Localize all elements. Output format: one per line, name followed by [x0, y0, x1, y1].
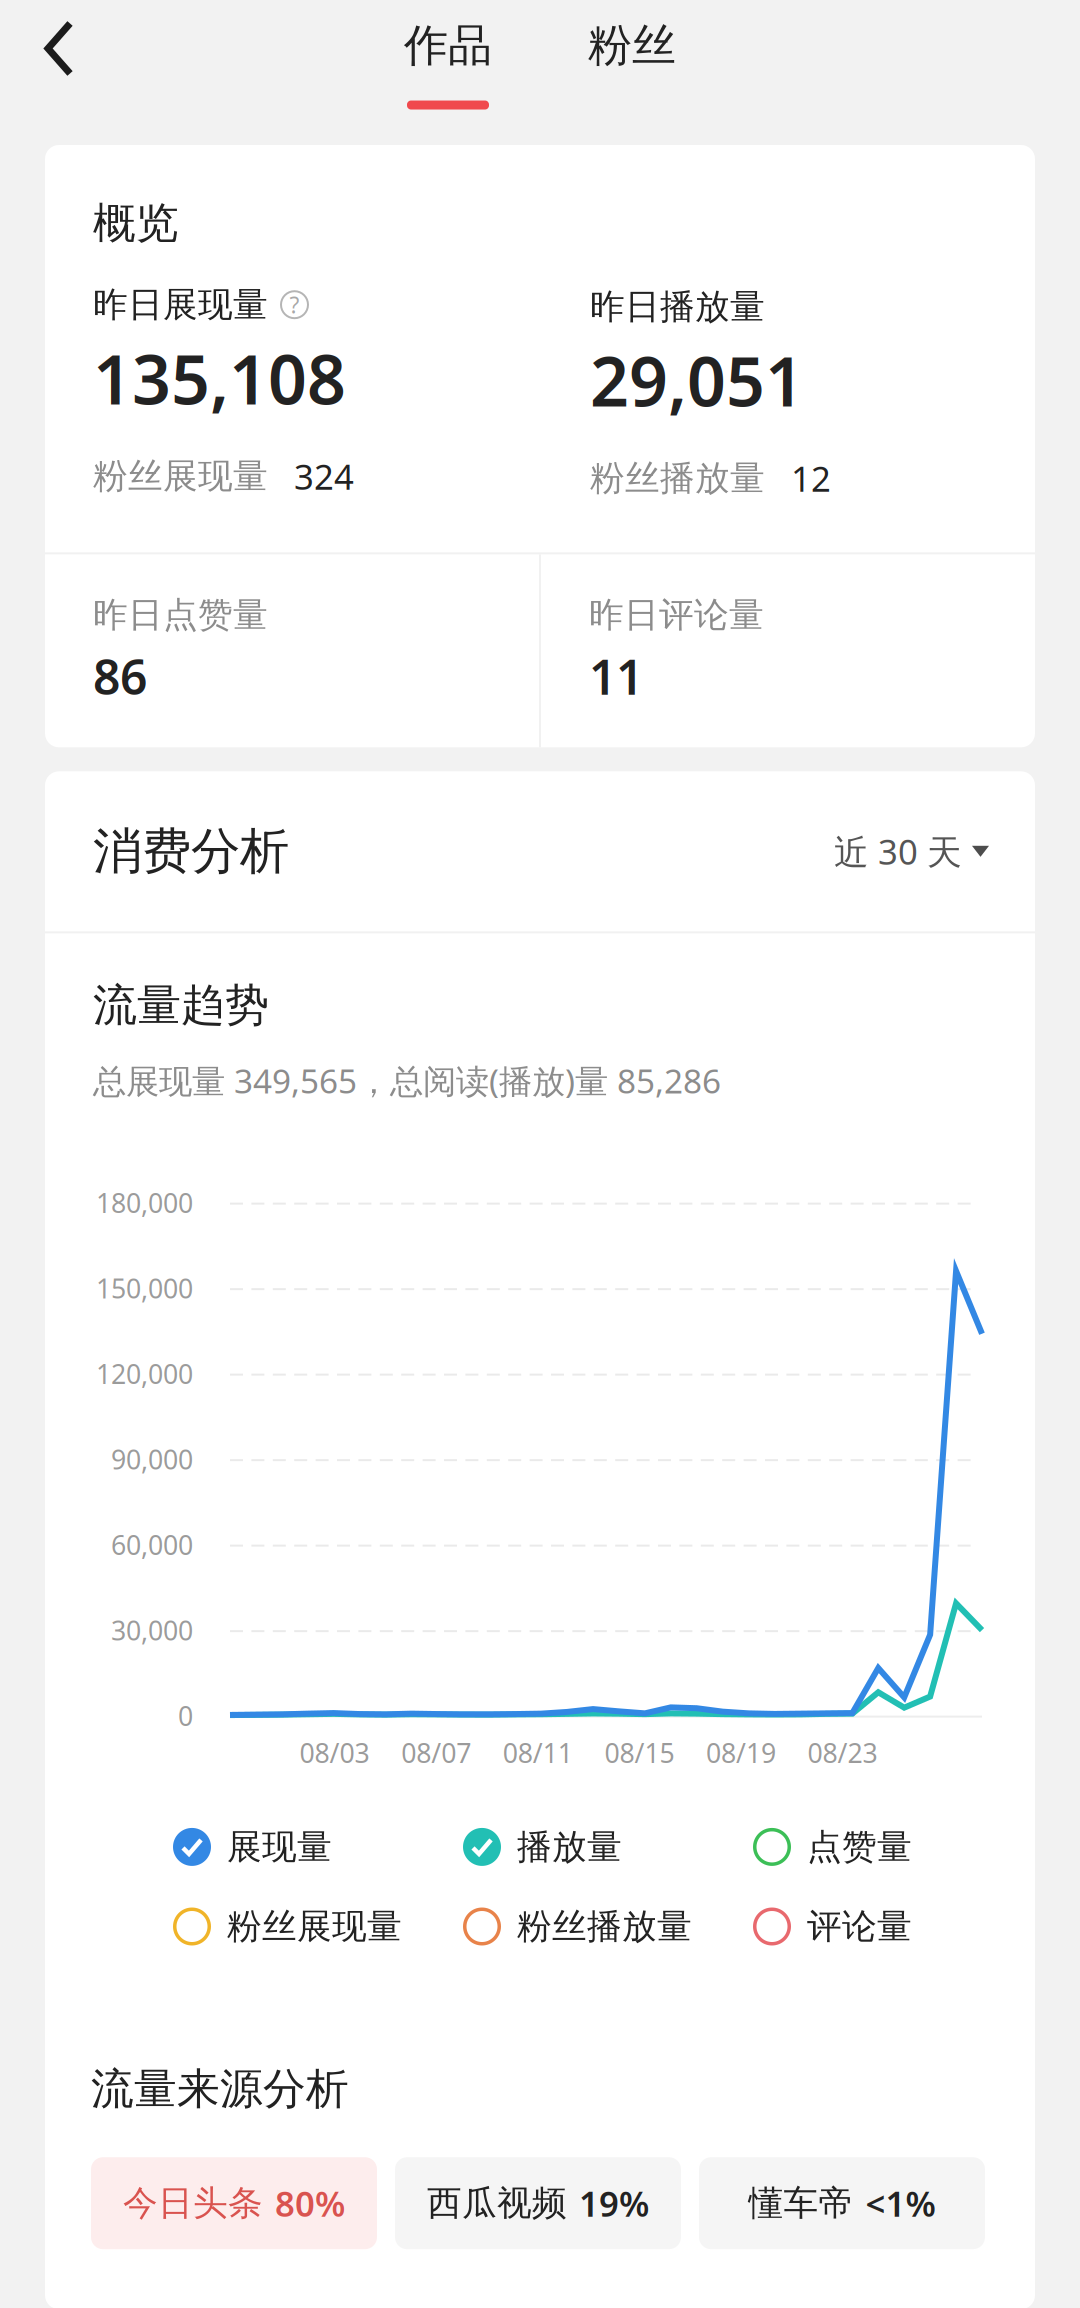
staticText: 180,000 — [96, 1185, 193, 1220]
staticText: 点赞量 — [807, 1826, 912, 1868]
staticText: 粉丝播放量 — [517, 1905, 692, 1948]
button[interactable]: 粉丝播放量 — [463, 1905, 753, 1948]
staticText: 昨日评论量 — [589, 594, 764, 636]
staticText: 总展现量 349,565，总阅读(播放)量 85,286 — [93, 1058, 721, 1103]
staticText: 60,000 — [111, 1527, 193, 1562]
staticText: 流量趋势 — [93, 978, 269, 1032]
staticText: 0 — [178, 1698, 193, 1733]
staticText: 11 — [589, 644, 643, 708]
button[interactable]: 懂车帝 — [699, 2157, 985, 2249]
staticText: 08/03 — [300, 1735, 370, 1770]
staticText: 08/11 — [503, 1735, 573, 1770]
staticText: 懂车帝 — [748, 2182, 853, 2224]
button[interactable]: 播放量 — [463, 1826, 753, 1868]
staticText: 90,000 — [111, 1441, 193, 1477]
staticText: 昨日展现量 — [93, 283, 268, 326]
staticText: <1% — [865, 2180, 935, 2226]
button[interactable]: 粉丝展现量 — [173, 1905, 463, 1948]
staticText: 粉丝播放量 — [590, 457, 765, 500]
staticText: 86 — [93, 644, 147, 708]
staticText: 135,108 — [93, 333, 346, 423]
staticText: 流量来源分析 — [91, 2063, 349, 2115]
staticText: 19% — [579, 2180, 649, 2226]
button[interactable]: 作品 — [404, 18, 492, 109]
staticText: 评论量 — [807, 1905, 912, 1948]
button[interactable]: 粉丝 — [588, 18, 676, 109]
staticText: 08/15 — [604, 1735, 674, 1770]
staticText: 80% — [275, 2180, 345, 2226]
staticText: ? — [289, 290, 299, 320]
staticText: 08/07 — [401, 1735, 471, 1770]
staticText: 消费分析 — [93, 821, 289, 882]
button[interactable]: 评论量 — [753, 1905, 983, 1948]
staticText: 展现量 — [227, 1826, 332, 1868]
button[interactable]: Back — [0, 35, 77, 78]
button[interactable]: 展现量 — [173, 1826, 463, 1868]
staticText: 作品 — [404, 18, 492, 72]
staticText: 30,000 — [111, 1612, 193, 1648]
staticText: 150,000 — [96, 1270, 193, 1306]
staticText: 粉丝展现量 — [93, 455, 268, 498]
staticText: 08/19 — [706, 1735, 776, 1770]
staticText: 播放量 — [517, 1826, 622, 1868]
staticText: 西瓜视频 — [427, 2182, 567, 2224]
staticText: 08/23 — [808, 1735, 878, 1770]
staticText: 概览 — [93, 197, 179, 249]
button[interactable]: 西瓜视频 — [395, 2157, 681, 2249]
staticText: 12 — [791, 455, 831, 501]
staticText: 昨日点赞量 — [93, 594, 268, 636]
button[interactable]: 近 30 天 — [834, 828, 989, 874]
button[interactable]: 今日头条 — [91, 2157, 377, 2249]
staticText: 324 — [294, 453, 354, 499]
staticText: 29,051 — [590, 335, 804, 425]
button[interactable]: 点赞量 — [753, 1826, 983, 1868]
staticText: 120,000 — [96, 1356, 193, 1391]
staticText: 近 30 天 — [834, 828, 962, 874]
staticText: 昨日播放量 — [590, 285, 765, 328]
staticText: 今日头条 — [123, 2182, 263, 2224]
staticText: 粉丝 — [588, 18, 676, 72]
staticText: 粉丝展现量 — [227, 1905, 402, 1948]
